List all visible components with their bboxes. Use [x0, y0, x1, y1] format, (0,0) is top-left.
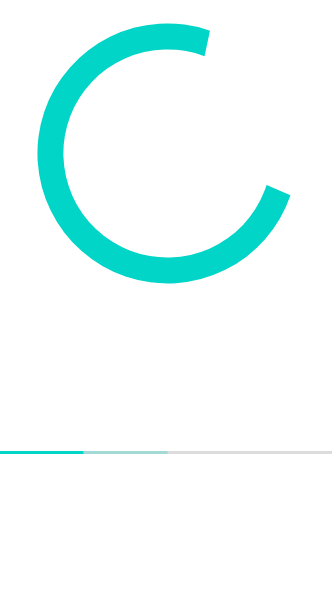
other: Loading	[0, 0, 332, 595]
other: Download progress	[0, 451, 332, 454]
